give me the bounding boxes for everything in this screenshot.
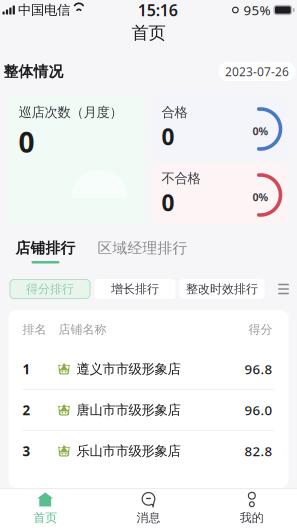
button[interactable]: 更多筛选 bbox=[272, 279, 294, 299]
staticText: 整体情况 bbox=[3, 62, 63, 80]
staticText: 96.8 bbox=[244, 360, 272, 378]
staticText: 首页 bbox=[33, 510, 57, 525]
staticText: 15:16 bbox=[138, 0, 178, 21]
staticText: 得分排行 bbox=[26, 282, 74, 296]
button[interactable]: 得分排行 bbox=[9, 279, 90, 299]
staticText: 得分 bbox=[248, 322, 272, 337]
staticText: 0% bbox=[252, 190, 268, 204]
staticText: 0 bbox=[18, 123, 34, 161]
staticText: 增长排行 bbox=[111, 282, 159, 296]
staticText: 82.8 bbox=[244, 442, 272, 460]
staticText: 不合格 bbox=[161, 170, 200, 186]
staticText: 唐山市市级形象店 bbox=[76, 402, 180, 418]
button[interactable]: 区域经理排行 bbox=[97, 239, 187, 263]
button[interactable]: 增长排行 bbox=[94, 279, 175, 299]
staticText: 96.0 bbox=[244, 401, 272, 419]
staticText: 0% bbox=[252, 124, 268, 138]
button[interactable]: 整改时效排行 bbox=[179, 279, 264, 299]
staticText: 3 bbox=[22, 442, 30, 460]
button[interactable]: 3 bbox=[8, 431, 288, 471]
button[interactable]: 2 bbox=[8, 390, 288, 430]
staticText: 合格 bbox=[161, 104, 187, 120]
staticText: 0 bbox=[161, 187, 174, 217]
staticText: 区域经理排行 bbox=[97, 239, 187, 257]
staticText: 店铺名称 bbox=[58, 322, 106, 337]
staticText: 店铺排行 bbox=[15, 239, 75, 257]
staticText: 中国电信 bbox=[18, 2, 70, 18]
button[interactable]: 1 bbox=[8, 349, 288, 389]
staticText: 95% bbox=[243, 1, 270, 19]
staticText: 巡店次数（月度） bbox=[18, 104, 122, 120]
staticText: 消息 bbox=[136, 510, 160, 525]
button[interactable]: 店铺排行 bbox=[15, 239, 75, 263]
staticText: 乐山市市级形象店 bbox=[76, 443, 180, 459]
button[interactable]: 首页 bbox=[0, 489, 97, 528]
staticText: 首页 bbox=[131, 22, 165, 44]
staticText: 2023-07-26 bbox=[225, 63, 289, 79]
staticText: 0 bbox=[161, 121, 174, 151]
staticText: 我的 bbox=[240, 510, 264, 525]
button[interactable]: 2023-07-26 bbox=[218, 62, 295, 81]
staticText: 2 bbox=[22, 401, 30, 419]
staticText: 遵义市市级形象店 bbox=[76, 361, 180, 377]
staticText: 整改时效排行 bbox=[186, 282, 258, 296]
button[interactable]: 消息 bbox=[97, 489, 200, 528]
staticText: 1 bbox=[22, 360, 30, 378]
button[interactable]: 我的 bbox=[200, 489, 297, 528]
staticText: 排名 bbox=[22, 322, 46, 337]
